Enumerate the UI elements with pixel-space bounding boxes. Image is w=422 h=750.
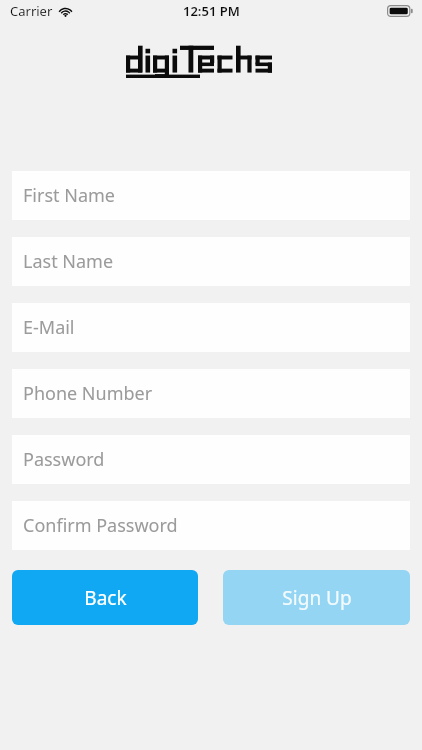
button[interactable]: Sign Up (223, 570, 410, 625)
staticText: First Name (23, 183, 115, 208)
button[interactable]: First Name (12, 171, 410, 220)
staticText: E-Mail (23, 315, 75, 340)
staticText: Sign Up (282, 585, 352, 611)
staticText: Back (84, 585, 127, 611)
staticText: Confirm Password (23, 513, 178, 538)
button[interactable]: Confirm Password (12, 501, 410, 550)
staticText: Last Name (23, 249, 114, 274)
button[interactable]: Back (12, 570, 198, 625)
staticText: 12:51 PM (183, 2, 240, 20)
button[interactable]: Last Name (12, 237, 410, 286)
button[interactable]: Phone Number (12, 369, 410, 418)
button[interactable]: Password (12, 435, 410, 484)
button[interactable]: E-Mail (12, 303, 410, 352)
staticText: Phone Number (23, 381, 153, 406)
staticText: Password (23, 447, 105, 472)
staticText: Carrier (10, 2, 53, 20)
